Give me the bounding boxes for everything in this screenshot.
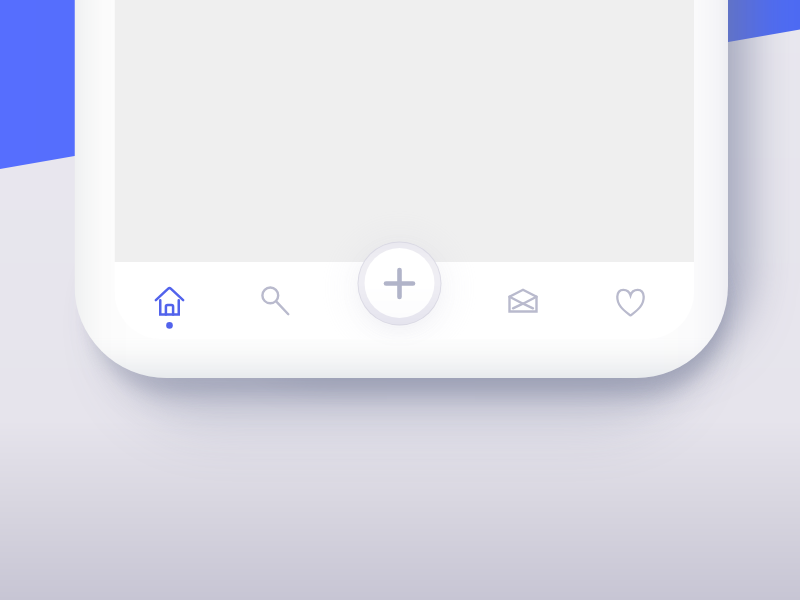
button[interactable]: Messages [488, 262, 560, 339]
button[interactable]: Search [240, 262, 312, 339]
button[interactable]: Home [134, 262, 206, 339]
button[interactable]: Favorites [595, 262, 667, 339]
button[interactable]: Create [357, 241, 441, 325]
